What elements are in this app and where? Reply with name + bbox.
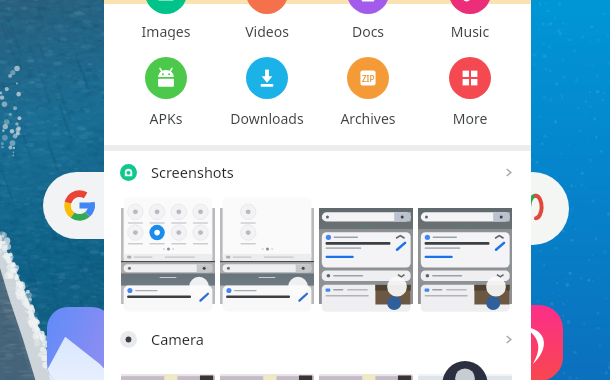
- button[interactable]: APKs: [116, 109, 216, 127]
- staticText: Videos: [217, 22, 317, 40]
- button[interactable]: Camera: [104, 328, 531, 350]
- button[interactable]: Images: [116, 22, 216, 40]
- button[interactable]: Photos: [47, 307, 113, 380]
- button[interactable]: APKs: [145, 57, 187, 99]
- staticText: Downloads: [217, 109, 317, 127]
- button[interactable]: Videos: [217, 22, 317, 40]
- button[interactable]: Downloads: [246, 57, 288, 99]
- button[interactable]: Screenshots: [104, 161, 531, 183]
- other: Open Screenshots: [502, 166, 515, 179]
- button[interactable]: Photos app: [496, 172, 569, 245]
- button[interactable]: [220, 208, 314, 304]
- button[interactable]: Docs: [318, 22, 418, 40]
- staticText: ZIP: [362, 73, 375, 84]
- button[interactable]: Music: [500, 305, 563, 380]
- button[interactable]: [418, 208, 512, 304]
- button[interactable]: [121, 374, 215, 380]
- button[interactable]: [220, 374, 314, 380]
- staticText: Images: [116, 22, 216, 40]
- button[interactable]: [319, 374, 413, 380]
- staticText: Archives: [318, 109, 418, 127]
- button[interactable]: [121, 208, 215, 304]
- staticText: Camera: [151, 329, 204, 349]
- staticText: Music: [420, 22, 520, 40]
- button[interactable]: Music: [420, 22, 520, 40]
- button[interactable]: Archives: [318, 109, 418, 127]
- button[interactable]: [319, 208, 413, 304]
- staticText: Screenshots: [151, 162, 234, 182]
- button[interactable]: More: [420, 109, 520, 127]
- button[interactable]: [418, 374, 512, 380]
- button[interactable]: More: [449, 57, 491, 99]
- button[interactable]: Archives: [347, 57, 389, 99]
- staticText: APKs: [116, 109, 216, 127]
- other: Open Camera: [502, 333, 515, 346]
- staticText: More: [420, 109, 520, 127]
- button[interactable]: Google search: [43, 172, 163, 239]
- button[interactable]: Downloads: [217, 109, 317, 127]
- staticText: Docs: [318, 22, 418, 40]
